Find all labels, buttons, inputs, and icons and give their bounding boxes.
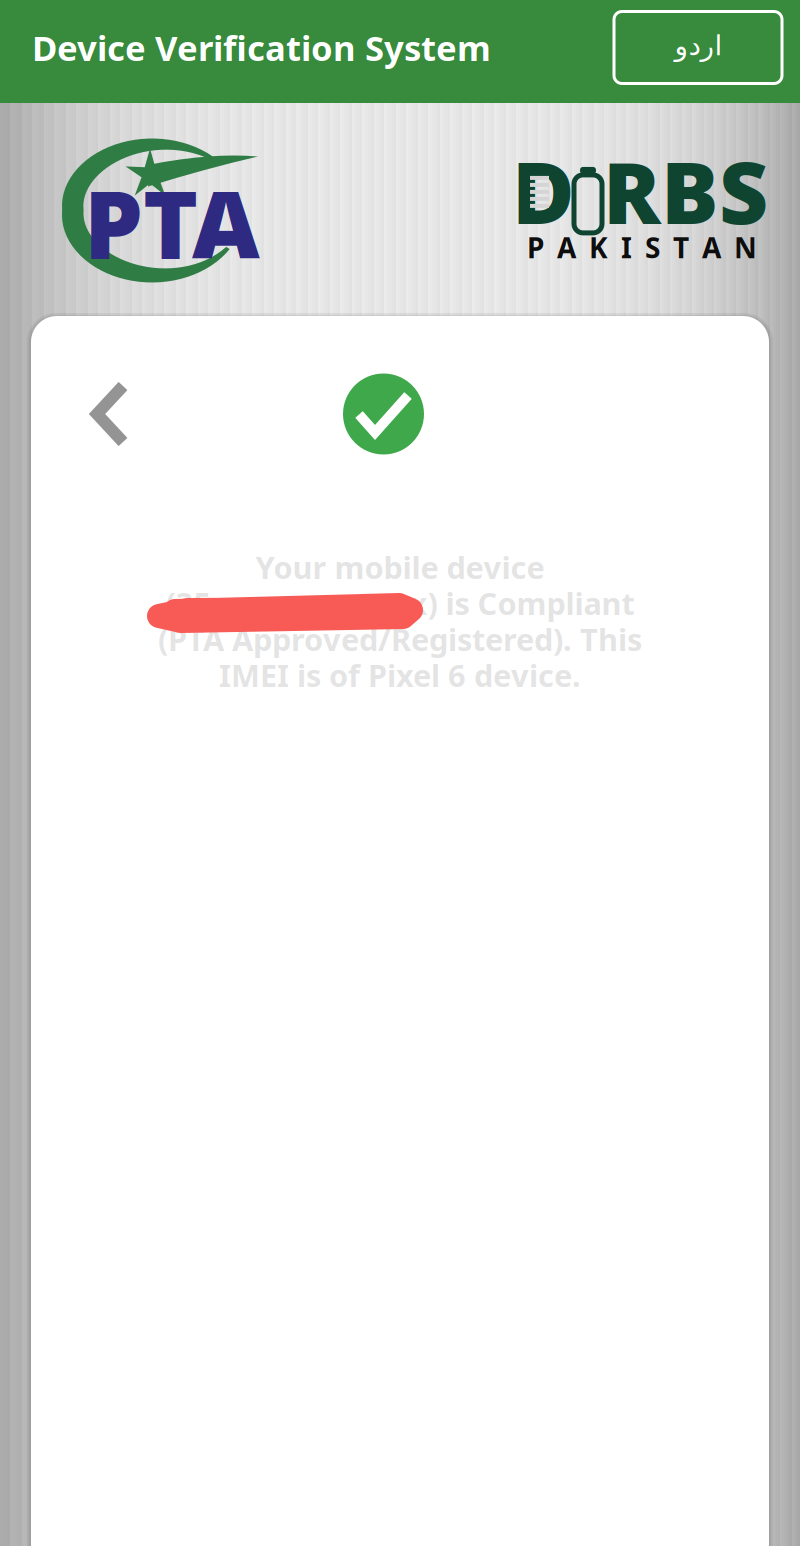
staticText: K <box>589 229 608 266</box>
staticText: A <box>702 229 721 266</box>
staticText: D <box>512 134 575 247</box>
staticText: Device Verification System <box>32 24 491 70</box>
button[interactable]: Back <box>89 369 163 459</box>
staticText: Your mobile device <box>255 547 544 587</box>
staticText: A <box>557 229 576 266</box>
staticText: IMEI is of Pixel 6 device. <box>219 655 581 695</box>
staticText: T <box>673 229 689 266</box>
staticText: N <box>734 229 757 266</box>
staticText: (35xxxxxxxxxxxx) is Compliant <box>165 583 634 623</box>
staticText: PTA <box>84 160 260 284</box>
button[interactable]: اردو <box>614 11 782 83</box>
staticText: RBS <box>603 134 768 247</box>
staticText: P <box>527 229 544 266</box>
staticText: (PTA Approved/Registered). This <box>158 619 642 659</box>
staticText: اردو <box>674 30 722 61</box>
staticText: S <box>645 229 660 266</box>
staticText: I <box>621 229 632 266</box>
